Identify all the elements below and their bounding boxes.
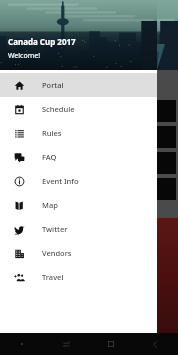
button[interactable]: Portal [0,73,157,97]
staticText: Canada Cup 2017 [8,36,76,47]
staticText: Vendors [42,248,72,258]
button[interactable]: Map [0,193,157,217]
staticText: Portal [42,80,64,90]
staticText: Travel [42,272,64,282]
button[interactable]: Vendors [0,241,157,265]
button[interactable]: Rules [0,121,157,145]
button[interactable]: Schedule [0,97,157,121]
button[interactable]: Event Info [0,169,157,193]
staticText: Twitter [42,224,68,234]
button[interactable]: Twitter [0,217,157,241]
button[interactable]: Switch keyboard [44,340,88,349]
staticText: Welcome! [8,51,41,61]
button[interactable]: Home [88,340,133,348]
staticText: FAQ [42,152,57,162]
button[interactable]: FAQ [0,145,157,169]
staticText: Rules [42,128,62,138]
button[interactable]: Back [133,340,178,349]
staticText: Schedule [42,104,75,114]
button[interactable]: Travel [0,265,157,289]
staticText: Map [42,200,58,210]
staticText: Event Info [42,176,79,186]
